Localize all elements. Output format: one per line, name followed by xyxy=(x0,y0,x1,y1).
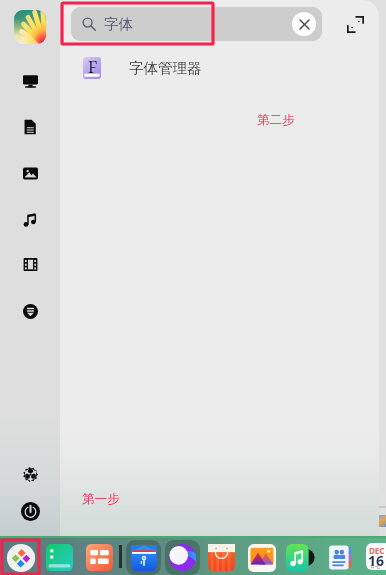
button[interactable]: Documents xyxy=(17,114,43,140)
button[interactable]: Calendar xyxy=(366,543,386,570)
button[interactable]: Browser xyxy=(165,540,200,575)
button[interactable]: Photos xyxy=(244,540,279,575)
staticText: 第一步 xyxy=(82,491,120,507)
button[interactable]: 字体 xyxy=(71,7,322,41)
button[interactable]: App Store xyxy=(82,540,117,575)
staticText: DEC xyxy=(369,545,385,556)
staticText: 字体 xyxy=(104,15,133,33)
button[interactable]: Computer xyxy=(17,68,43,94)
button[interactable]: F xyxy=(60,50,379,86)
button[interactable]: User avatar xyxy=(14,10,46,44)
button[interactable]: Market xyxy=(204,540,239,575)
button[interactable]: Fullscreen xyxy=(343,12,367,36)
button[interactable]: Music xyxy=(17,207,43,233)
button[interactable]: Settings xyxy=(17,461,43,487)
staticText: 字体管理器 xyxy=(129,59,202,77)
button[interactable]: Terminal xyxy=(42,540,77,575)
button[interactable]: Downloads xyxy=(17,298,43,324)
button[interactable]: Launcher xyxy=(3,540,38,575)
button[interactable]: Videos xyxy=(17,251,43,277)
staticText: 第二步 xyxy=(257,112,295,128)
button[interactable]: Clear search xyxy=(292,12,316,36)
staticText: F xyxy=(88,56,98,78)
staticText: 16 xyxy=(368,551,385,570)
button[interactable]: Power xyxy=(17,498,43,524)
button[interactable]: Pictures xyxy=(17,160,43,186)
button[interactable]: Music xyxy=(282,540,317,575)
button[interactable]: Contacts xyxy=(323,540,358,575)
button[interactable]: Files xyxy=(126,540,161,575)
staticText: 廿七 xyxy=(370,563,380,569)
